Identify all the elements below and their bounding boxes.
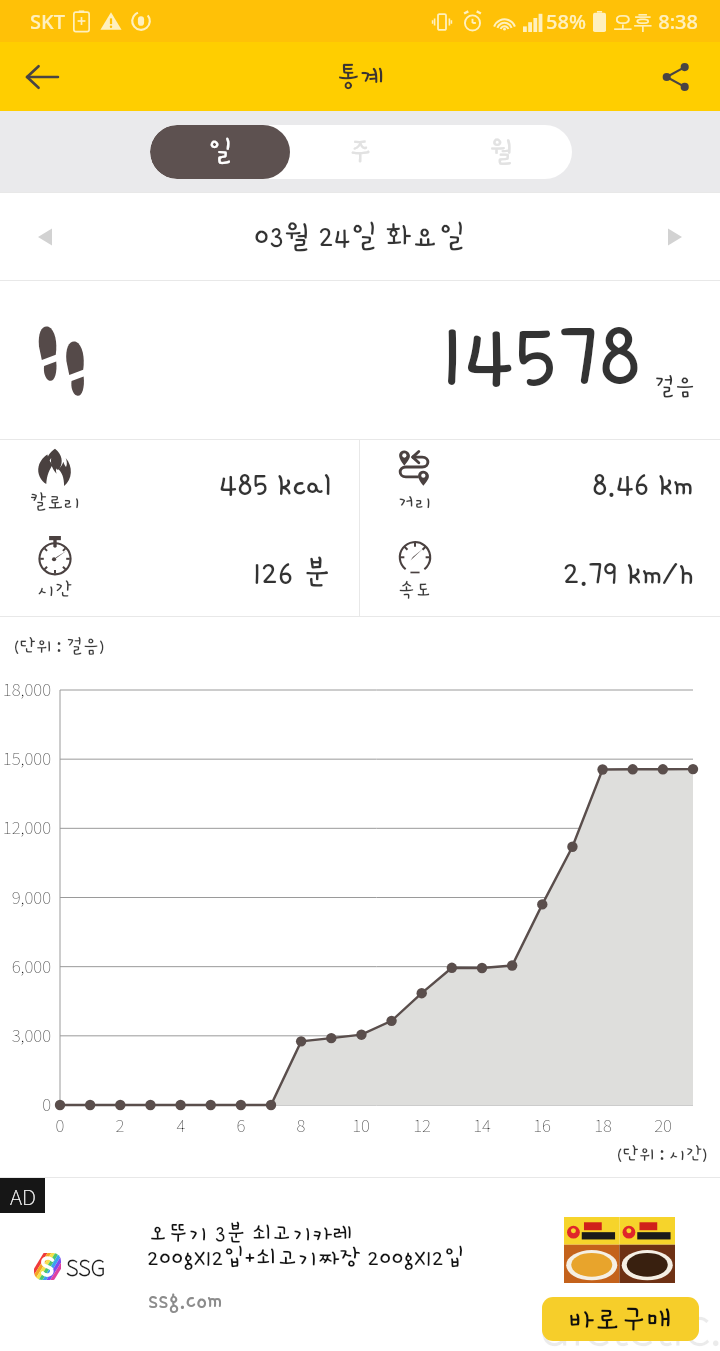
staticText: 월	[489, 137, 514, 167]
staticText: 바로구매	[569, 1303, 672, 1335]
staticText: 9,000	[1, 884, 51, 909]
staticText: (단위 : 시간)	[617, 1144, 707, 1164]
staticText: SSG	[66, 1250, 106, 1282]
staticText: 12,000	[1, 814, 51, 839]
staticText: 16	[527, 1112, 557, 1137]
button[interactable]: 바로구매	[542, 1297, 699, 1341]
staticText: 거리	[398, 492, 432, 513]
staticText: 0	[1, 1091, 51, 1116]
staticText: 칼로리	[30, 492, 81, 513]
button[interactable]: 월	[431, 125, 572, 179]
staticText: 오뚜기 3분 쇠고기카레	[148, 1220, 353, 1245]
button[interactable]: 거리	[360, 440, 720, 528]
staticText: 2.79 km/h	[563, 555, 694, 591]
staticText: 6,000	[1, 953, 51, 978]
staticText: 0	[45, 1112, 75, 1137]
button[interactable]: 시간	[0, 528, 359, 617]
staticText: 3,000	[1, 1022, 51, 1047]
staticText: 4	[166, 1112, 196, 1137]
button[interactable]: Next day	[648, 210, 702, 264]
button[interactable]: 칼로리	[0, 440, 359, 528]
staticText: 485 kcal	[219, 466, 332, 502]
staticText: dietetic.com	[540, 1285, 720, 1351]
staticText: 58%	[546, 8, 586, 35]
button[interactable]: 속도	[360, 528, 720, 617]
staticText: 걸음	[655, 374, 696, 399]
staticText: 일	[208, 137, 233, 167]
staticText: AD	[10, 1181, 36, 1211]
staticText: 18	[588, 1112, 618, 1137]
staticText: ssg.com	[148, 1286, 223, 1313]
staticText: 200gX12입+쇠고기짜장 200gX12입	[147, 1245, 465, 1271]
staticText: 18,000	[1, 676, 51, 701]
staticText: 20	[648, 1112, 678, 1137]
staticText: 14578	[441, 304, 642, 404]
staticText: 12	[407, 1112, 437, 1137]
staticText: 10	[346, 1112, 376, 1137]
staticText: 6	[226, 1112, 256, 1137]
staticText: (단위 : 걸음)	[14, 636, 104, 656]
button[interactable]: 주	[290, 125, 431, 179]
staticText: 통계	[336, 62, 385, 92]
button[interactable]: Previous day	[18, 210, 72, 264]
button[interactable]: Back	[12, 47, 72, 107]
staticText: SKT	[30, 8, 65, 35]
staticText: 14	[467, 1112, 497, 1137]
staticText: 8	[286, 1112, 316, 1137]
staticText: 8.46 km	[592, 466, 694, 502]
staticText: 시간	[38, 580, 72, 601]
staticText: 주	[348, 137, 373, 167]
staticText: 03월 24일 화요일	[254, 220, 466, 253]
button[interactable]: Share	[646, 47, 706, 107]
staticText: 15,000	[1, 745, 51, 770]
staticText: 오후 8:38	[613, 8, 698, 35]
staticText: 속도	[398, 580, 432, 601]
staticText: 2	[105, 1112, 135, 1137]
staticText: 126 분	[253, 555, 332, 591]
button[interactable]: 일	[150, 125, 290, 179]
